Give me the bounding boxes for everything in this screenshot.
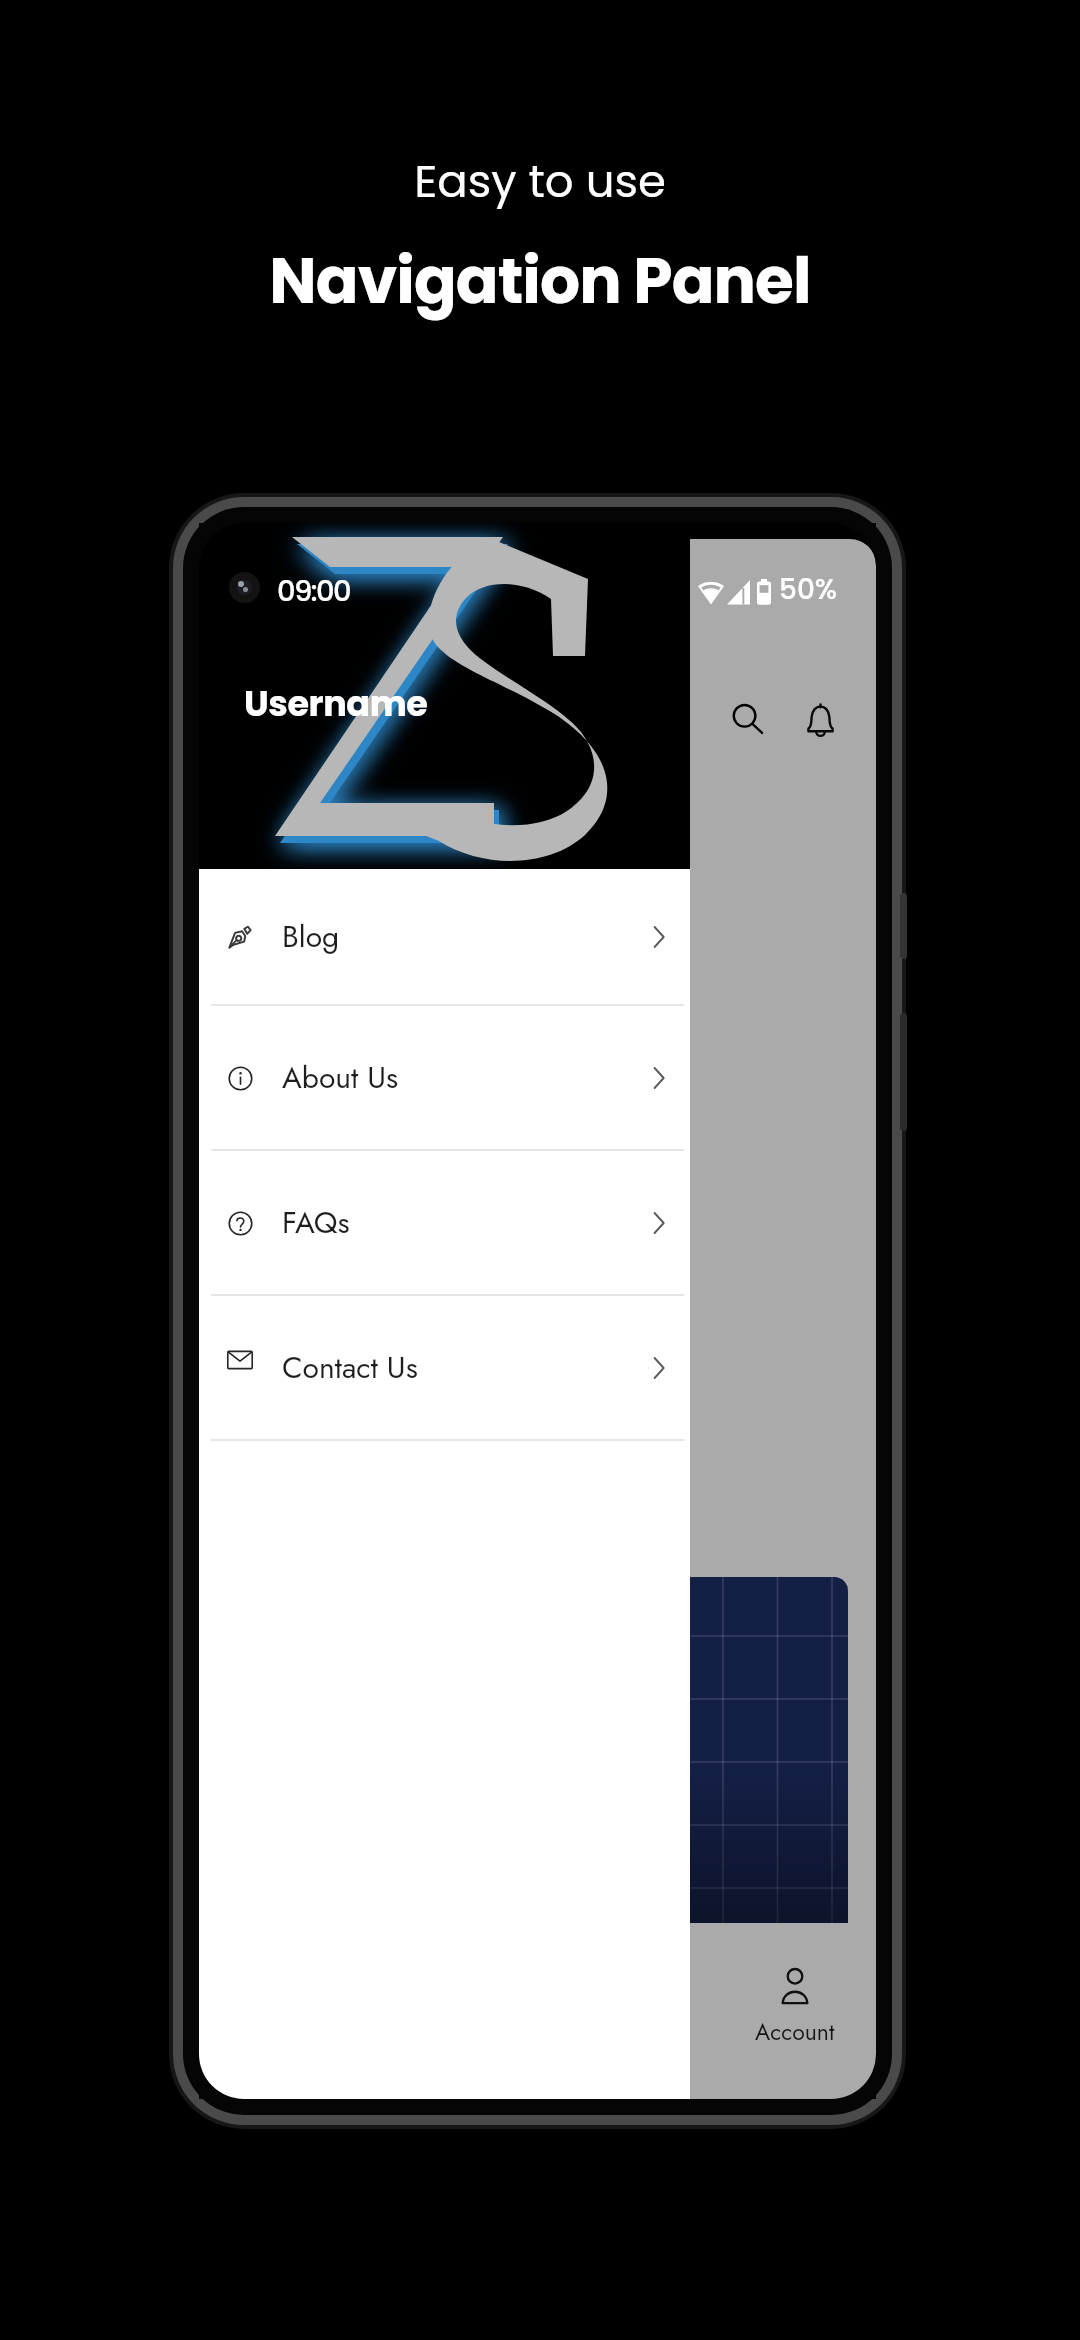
- staticText: Account: [755, 2015, 835, 2048]
- staticText: Blog: [282, 915, 340, 958]
- button[interactable]: Notifications: [786, 686, 854, 754]
- staticText: About Us: [282, 1056, 399, 1099]
- button[interactable]: About Us: [199, 1006, 690, 1151]
- staticText: Username: [244, 679, 428, 728]
- staticText: Contact Us: [282, 1346, 418, 1389]
- button[interactable]: Contact Us: [199, 1296, 690, 1441]
- staticText: Easy to use: [414, 150, 666, 213]
- staticText: Navigation Panel: [269, 237, 811, 325]
- button[interactable]: Search: [714, 686, 782, 754]
- button[interactable]: FAQs: [199, 1151, 690, 1296]
- staticText: 09:00: [277, 571, 350, 612]
- staticText: FAQs: [282, 1201, 350, 1244]
- button[interactable]: Account: [700, 1923, 876, 2099]
- button[interactable]: Blog: [199, 869, 690, 1006]
- staticText: 50%: [779, 570, 838, 609]
